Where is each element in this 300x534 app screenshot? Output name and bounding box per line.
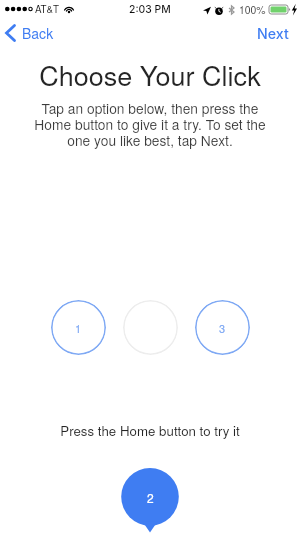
staticText: 100% bbox=[239, 2, 266, 17]
button[interactable]: Click option 2 bbox=[121, 468, 179, 532]
staticText: Tap an option below, then press the Home… bbox=[28, 98, 272, 150]
staticText: Choose Your Click bbox=[0, 55, 300, 94]
staticText: Press the Home button to try it bbox=[0, 421, 300, 440]
button[interactable]: Option 3 bbox=[195, 300, 250, 355]
button[interactable]: Back bbox=[0, 23, 64, 43]
staticText: 2 bbox=[147, 489, 154, 506]
button[interactable]: Next bbox=[245, 25, 300, 42]
staticText: Back bbox=[22, 23, 54, 43]
button[interactable]: Empty option bbox=[123, 300, 178, 355]
staticText: AT&T bbox=[35, 2, 60, 16]
button[interactable]: Option 1 bbox=[51, 300, 106, 355]
staticText: 2:03 PM bbox=[129, 3, 171, 16]
staticText: 3 bbox=[219, 320, 226, 336]
staticText: 1 bbox=[75, 320, 82, 336]
